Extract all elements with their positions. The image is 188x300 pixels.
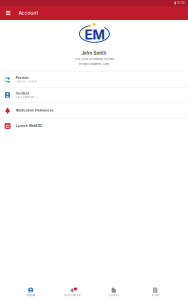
staticText: Emergency Management Agency — [78, 63, 109, 66]
staticText: Incident — [16, 91, 29, 95]
staticText: EM — [84, 27, 104, 43]
button[interactable]: Incident — [0, 87, 188, 102]
staticText: Account — [18, 10, 38, 16]
button[interactable]: Menu — [0, 6, 18, 20]
staticText: Notifications — [64, 294, 80, 297]
button[interactable]: Account — [10, 283, 51, 297]
staticText: Boards — [109, 294, 118, 297]
button[interactable]: Position — [0, 72, 188, 87]
staticText: Daily Operations — [16, 96, 34, 98]
button[interactable]: Launch WebEOC — [0, 118, 188, 133]
staticText: Position — [16, 76, 29, 80]
staticText: https://brand-lab.webeocasp.com/brand — [74, 58, 113, 61]
staticText: John Smith — [81, 50, 106, 56]
staticText: Launch WebEOC — [16, 124, 42, 128]
staticText: Notification Preferences — [16, 109, 54, 112]
button[interactable]: Forms — [134, 283, 176, 297]
staticText: CMS EOC Director — [16, 80, 37, 83]
staticText: Forms — [152, 294, 159, 297]
button[interactable]: Notifications — [51, 283, 93, 297]
button[interactable]: Notification Preferences — [0, 103, 188, 118]
button[interactable]: Boards — [93, 283, 134, 297]
staticText: 10:06 — [177, 1, 185, 5]
staticText: Account — [26, 294, 35, 297]
